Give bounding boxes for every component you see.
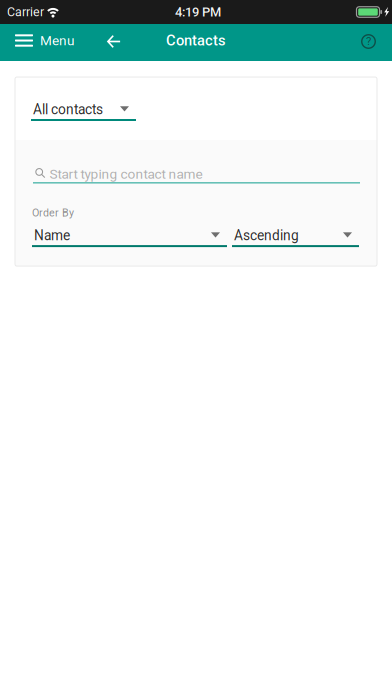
button[interactable]: Ascending (232, 228, 359, 247)
staticText: Ascending (234, 228, 299, 244)
staticText: Start typing contact name (49, 166, 202, 182)
staticText: Menu (40, 32, 74, 48)
staticText: Order By (32, 207, 74, 219)
staticText: Name (34, 228, 70, 244)
staticText: All contacts (33, 101, 103, 118)
button[interactable]: All contacts (31, 102, 136, 121)
button[interactable]: Name (32, 228, 227, 247)
button[interactable]: Help (347, 24, 392, 61)
staticText: Carrier (7, 5, 44, 19)
staticText: Contacts (166, 32, 226, 49)
button[interactable]: Back (89, 24, 127, 61)
staticText: 4:19 PM (175, 4, 221, 20)
staticText: ? (366, 35, 371, 48)
button[interactable]: Menu (0, 24, 89, 61)
